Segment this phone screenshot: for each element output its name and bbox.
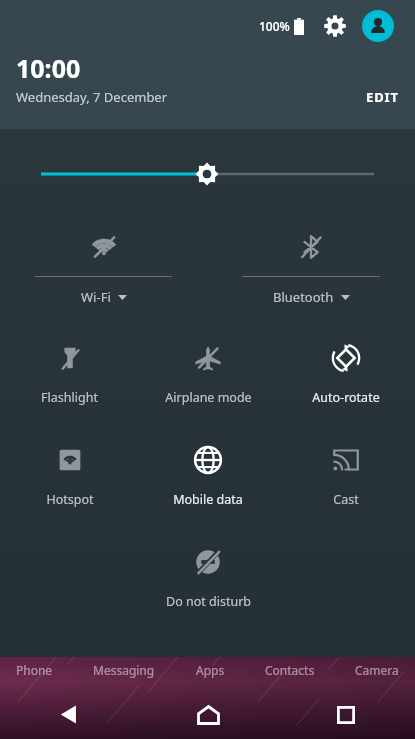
staticText: Auto-rotate <box>312 389 380 406</box>
button[interactable]: Phone <box>10 662 59 678</box>
staticText: Mobile data <box>173 491 243 508</box>
button[interactable]: Home <box>139 690 277 739</box>
staticText: 10:00 <box>16 51 81 85</box>
button[interactable]: Camera <box>349 662 405 678</box>
staticText: Hotspot <box>46 491 94 508</box>
button[interactable]: Airplane mode <box>139 331 277 433</box>
button[interactable]: Cast <box>277 433 415 535</box>
button[interactable]: Settings <box>321 12 349 40</box>
button[interactable]: Auto-rotate <box>277 331 415 433</box>
button[interactable]: Hotspot <box>0 433 139 535</box>
staticText: Wi-Fi <box>81 288 111 306</box>
staticText: Contacts <box>265 662 315 678</box>
staticText: Messaging <box>93 662 155 678</box>
staticText: Bluetooth <box>273 288 334 306</box>
staticText: Camera <box>355 662 399 678</box>
staticText: Cast <box>333 491 359 508</box>
button[interactable]: Contacts <box>259 662 321 678</box>
staticText: Do not disturb <box>166 593 251 610</box>
button[interactable]: Do not disturb <box>139 535 277 637</box>
button[interactable]: EDIT <box>362 85 403 109</box>
button[interactable]: Mobile data <box>139 433 277 535</box>
staticText: Flashlight <box>41 389 98 406</box>
button[interactable]: Apps <box>190 662 231 678</box>
button[interactable]: Flashlight <box>0 331 139 433</box>
button[interactable]: User account <box>362 10 394 42</box>
button[interactable]: Recent apps <box>277 690 415 739</box>
staticText: Wednesday, 7 December <box>16 88 168 106</box>
button[interactable]: Brightness <box>0 129 415 219</box>
button[interactable]: Back <box>0 690 139 739</box>
button[interactable]: Messaging <box>87 662 161 678</box>
button[interactable]: Wi-Fi <box>0 219 207 319</box>
staticText: Phone <box>16 662 53 678</box>
staticText: Airplane mode <box>165 389 252 406</box>
staticText: EDIT <box>366 88 399 106</box>
staticText: Apps <box>196 662 225 678</box>
button[interactable]: Bluetooth <box>207 219 415 319</box>
staticText: 100% <box>259 18 290 34</box>
